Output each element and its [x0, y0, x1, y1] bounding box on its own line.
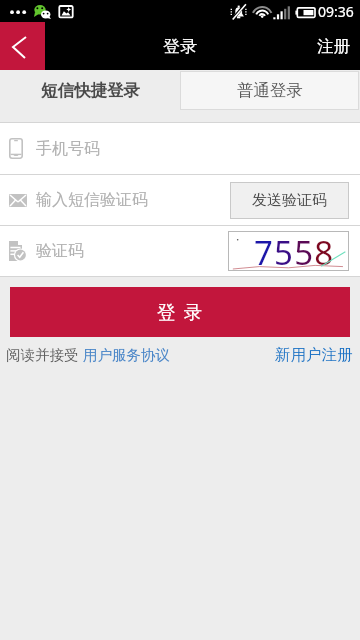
staticText: 短信快捷登录 — [41, 80, 140, 101]
staticText: 登录 — [163, 36, 197, 57]
button[interactable]: 短信快捷登录 — [0, 70, 180, 123]
staticText: 注册 — [317, 36, 350, 57]
staticText: 输入短信验证码 — [36, 190, 148, 210]
button[interactable]: Back — [0, 22, 45, 70]
button[interactable]: 普通登录 — [180, 71, 359, 110]
button[interactable]: 发送验证码 — [230, 182, 349, 219]
staticText: 阅读并接受 — [6, 346, 79, 364]
staticText: 发送验证码 — [252, 191, 327, 210]
staticText: 验证码 — [36, 241, 84, 261]
staticText: 登 — [157, 301, 176, 324]
staticText: 7558 — [254, 230, 335, 270]
button[interactable]: Refresh captcha — [228, 231, 349, 271]
staticText: 普通登录 — [237, 80, 303, 101]
button[interactable]: 注册 — [301, 22, 360, 70]
button[interactable]: 登 — [10, 287, 350, 337]
staticText: 用户服务协议 — [83, 346, 170, 364]
button[interactable]: 新用户注册 — [275, 345, 353, 365]
staticText: 录 — [184, 301, 203, 324]
staticText: 手机号码 — [36, 139, 100, 159]
staticText: 新用户注册 — [275, 345, 353, 365]
button[interactable]: 用户服务协议 — [83, 346, 170, 364]
staticText: 09:36 — [318, 2, 354, 21]
